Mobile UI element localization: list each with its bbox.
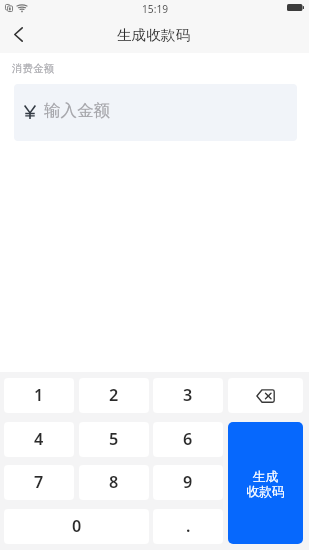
staticText: 9: [183, 471, 193, 493]
staticText: 15:19: [142, 2, 169, 16]
button[interactable]: 7: [4, 465, 74, 500]
button[interactable]: 0: [4, 509, 149, 544]
staticText: 3: [183, 384, 193, 406]
button[interactable]: 3: [153, 378, 223, 413]
staticText: 1: [34, 384, 44, 406]
staticText: 2: [109, 384, 119, 406]
staticText: .: [186, 515, 191, 537]
button[interactable]: 2: [79, 378, 149, 413]
button[interactable]: 4: [4, 422, 74, 457]
button[interactable]: 8: [79, 465, 149, 500]
button[interactable]: 9: [153, 465, 223, 500]
staticText: 7: [34, 471, 44, 493]
staticText: 6: [183, 428, 193, 450]
button[interactable]: .: [153, 509, 223, 544]
staticText: 输入金额: [44, 100, 110, 121]
staticText: 4: [34, 428, 44, 450]
staticText: 消费金额: [12, 62, 54, 75]
staticText: 8: [109, 471, 119, 493]
button[interactable]: 生成 收款码: [228, 422, 303, 544]
button[interactable]: 6: [153, 422, 223, 457]
button[interactable]: Amount input: [14, 84, 297, 141]
button[interactable]: 5: [79, 422, 149, 457]
staticText: 生成收款码: [117, 26, 190, 44]
staticText: 5: [109, 428, 119, 450]
button[interactable]: 1: [4, 378, 74, 413]
staticText: 0: [72, 515, 82, 537]
button[interactable]: Back: [0, 20, 38, 53]
button[interactable]: Backspace: [228, 378, 303, 413]
staticText: 生成 收款码: [246, 469, 285, 500]
